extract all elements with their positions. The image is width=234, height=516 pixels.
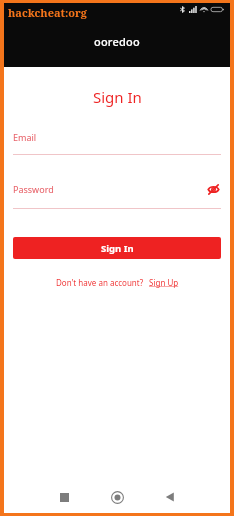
button[interactable]: Sign Up <box>149 277 179 288</box>
button[interactable]: Sign In <box>13 237 221 259</box>
button[interactable]: Email <box>13 131 221 155</box>
staticText: Sign In <box>101 242 134 255</box>
staticText: Sign Up <box>149 277 179 288</box>
staticText: Sign In <box>93 87 142 107</box>
staticText: Password <box>13 183 205 195</box>
button[interactable]: Password <box>13 181 221 209</box>
button[interactable]: Back <box>153 481 187 513</box>
staticText: Don't have an account? <box>56 277 144 288</box>
button[interactable]: Home <box>100 481 134 513</box>
button[interactable]: Recents <box>47 481 81 513</box>
staticText: Email <box>13 131 221 143</box>
staticText: ooredoo <box>94 34 140 49</box>
button[interactable]: Toggle password visibility <box>205 181 221 197</box>
staticText: hackcheat:org <box>8 5 88 20</box>
